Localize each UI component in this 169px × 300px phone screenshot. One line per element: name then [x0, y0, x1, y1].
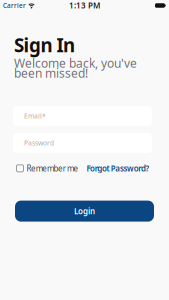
staticText: Sign In: [14, 33, 75, 57]
staticText: 1:13 PM: [69, 0, 100, 11]
button[interactable]: Remember me: [16, 163, 78, 174]
staticText: Remember me: [26, 163, 78, 174]
button[interactable]: Login: [15, 201, 154, 222]
staticText: Forgot Password?: [86, 163, 149, 174]
button[interactable]: Forgot Password?: [86, 163, 149, 174]
button[interactable]: Email: [13, 106, 152, 126]
staticText: Password: [24, 139, 54, 147]
staticText: Carrier: [3, 1, 26, 10]
staticText: Login: [74, 206, 95, 216]
staticText: Email*: [24, 112, 46, 120]
button[interactable]: Password: [13, 133, 152, 153]
staticText: been missed!: [14, 65, 88, 81]
staticText: Welcome back, you've: [14, 55, 137, 71]
